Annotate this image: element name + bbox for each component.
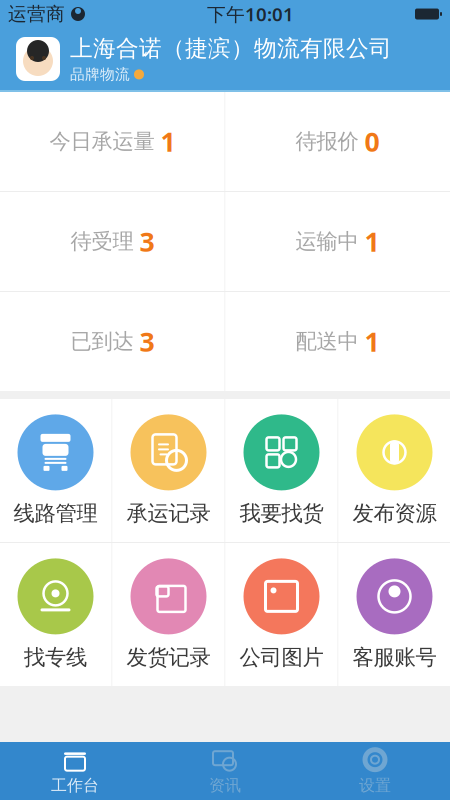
staticText: 已到达: [70, 328, 133, 355]
button[interactable]: 今日承运量: [0, 92, 224, 191]
button[interactable]: 我要找货: [225, 399, 337, 542]
staticText: 1: [160, 124, 175, 159]
staticText: 1: [364, 324, 379, 359]
button[interactable]: 已到达: [0, 292, 224, 391]
button[interactable]: 承运记录: [112, 399, 224, 542]
staticText: 客服账号: [352, 644, 436, 671]
button[interactable]: 运输中: [225, 192, 449, 291]
staticText: 承运记录: [126, 500, 210, 527]
staticText: 0: [364, 124, 379, 159]
staticText: 线路管理: [13, 500, 97, 527]
button[interactable]: 工作台: [0, 743, 150, 799]
staticText: 设置: [359, 776, 391, 795]
button[interactable]: 线路管理: [0, 399, 111, 542]
staticText: 3: [139, 324, 154, 359]
staticText: 下午10:01: [207, 2, 294, 26]
staticText: 我要找货: [239, 500, 323, 527]
button[interactable]: 公司图片: [225, 543, 337, 686]
staticText: 发货记录: [126, 644, 210, 671]
button[interactable]: 发货记录: [112, 543, 224, 686]
staticText: 品牌物流: [70, 65, 130, 83]
staticText: 配送中: [295, 328, 358, 355]
button[interactable]: 配送中: [225, 292, 449, 391]
button[interactable]: 上海合诺（捷滨）物流有限公司: [0, 28, 450, 90]
staticText: 待报价: [295, 128, 358, 155]
staticText: 资讯: [209, 776, 241, 795]
staticText: 发布资源: [352, 500, 436, 527]
staticText: 上海合诺（捷滨）物流有限公司: [70, 35, 392, 62]
staticText: 运营商: [8, 2, 65, 25]
staticText: 1: [364, 224, 379, 259]
button[interactable]: 找专线: [0, 543, 111, 686]
button[interactable]: 资讯: [150, 743, 300, 799]
staticText: 待受理: [70, 228, 133, 255]
button[interactable]: 待报价: [225, 92, 449, 191]
staticText: 工作台: [51, 776, 99, 795]
staticText: 找专线: [24, 644, 87, 671]
staticText: 公司图片: [239, 644, 323, 671]
button[interactable]: 待受理: [0, 192, 224, 291]
button[interactable]: 设置: [300, 743, 450, 799]
staticText: 运输中: [295, 228, 358, 255]
staticText: 3: [139, 224, 154, 259]
button[interactable]: 发布资源: [338, 399, 450, 542]
staticText: 今日承运量: [49, 128, 154, 155]
button[interactable]: 客服账号: [338, 543, 450, 686]
